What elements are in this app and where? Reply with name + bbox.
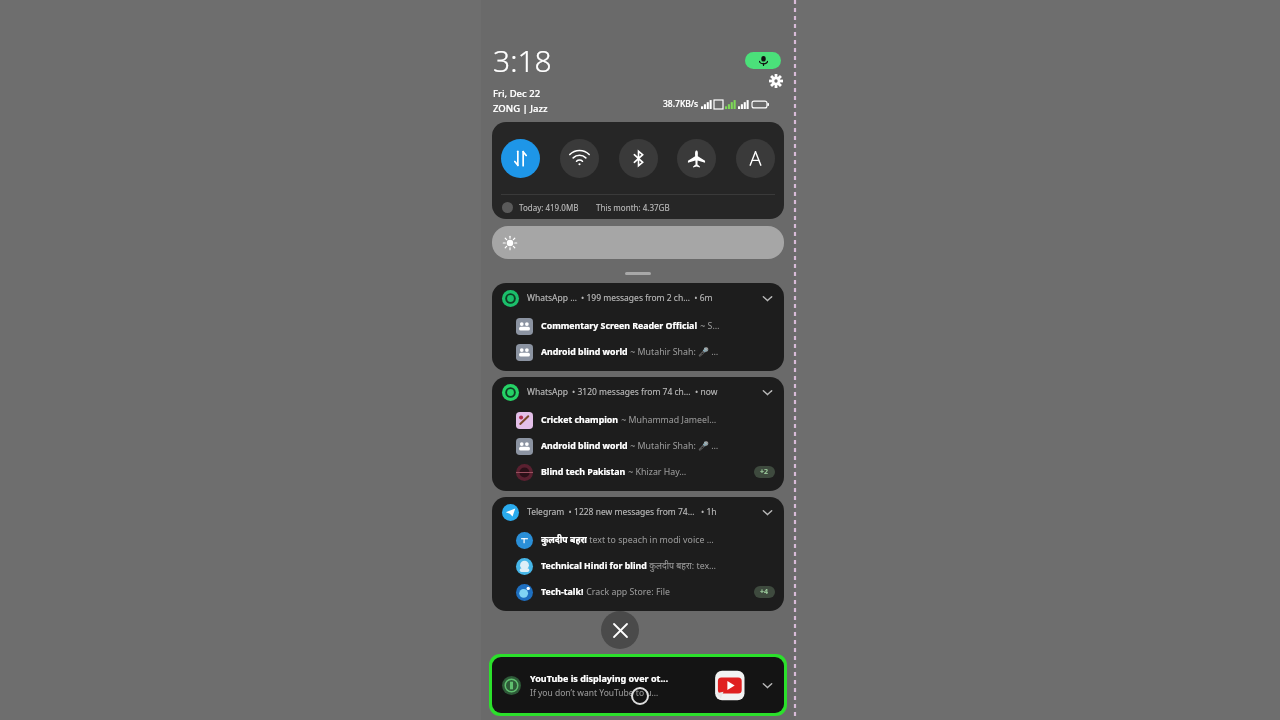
staticText: ~ S… [698,320,720,332]
staticText: YouTube is displaying over ot… [530,672,669,684]
button[interactable]: Mobile data [501,139,540,178]
staticText: This month: 4.37GB [596,202,670,213]
staticText: • 199 messages from 2 ch… • 6m [581,292,713,304]
staticText: ~ Mutahir Shah: 🎤 … [628,346,719,358]
staticText: Android blind world [541,346,628,358]
staticText: Android blind world [541,440,628,452]
staticText: Crack app Store: File [584,586,670,598]
staticText: Tech-talk! [541,586,584,598]
button[interactable]: Expand [758,383,776,401]
button[interactable]: Expand [758,503,776,521]
staticText: Today: 419.0MB [519,202,579,213]
staticText: ZONG | Jazz [493,102,548,115]
button[interactable]: Brightness [492,226,784,259]
button[interactable]: Telegram • 1228 new messages from 74… • … [492,497,784,611]
staticText: 3:18 [493,40,552,81]
staticText: ~ Khizar Hay… [626,466,687,478]
staticText: 38.7KB/s [663,98,699,110]
staticText: ~ Muhammad Jameel… [619,414,717,426]
staticText: ~ Mutahir Shah: 🎤 … [628,440,719,452]
staticText: कुलदीप बहरा: tex… [647,560,717,572]
staticText: Fri, Dec 22 [493,87,541,100]
staticText: text to speach in modi voice … [587,534,714,546]
staticText: +2 [760,467,769,477]
button[interactable]: Bluetooth [619,139,658,178]
staticText: Telegram • 1228 new messages from 74… • … [527,506,717,518]
button[interactable]: WhatsApp … [492,283,784,371]
staticText: WhatsApp [527,386,568,398]
staticText: Blind tech Pakistan [541,466,626,478]
button[interactable]: Expand [758,289,776,307]
button[interactable]: Expand [758,676,776,694]
staticText: कुलदीप बहरा [541,534,587,546]
staticText: +4 [760,587,769,597]
button[interactable]: Wi-Fi [560,139,599,178]
button[interactable]: YouTube is displaying over ot… [492,657,784,713]
staticText: • 3120 messages from 74 ch… • now [572,386,718,398]
button[interactable]: Auto rotate [736,139,775,178]
button[interactable]: Microphone in use [745,52,781,69]
button[interactable]: Settings [767,72,785,90]
button[interactable]: WhatsApp [492,377,784,491]
staticText: WhatsApp … [527,292,577,304]
staticText: Commentary Screen Reader Official [541,320,698,332]
button[interactable]: Airplane mode [677,139,716,178]
button[interactable]: Clear all notifications [601,611,639,649]
staticText: Technical Hindi for blind [541,560,647,572]
staticText: If you don’t want YouTube to u… [530,687,659,699]
staticText: Cricket champion [541,414,619,426]
